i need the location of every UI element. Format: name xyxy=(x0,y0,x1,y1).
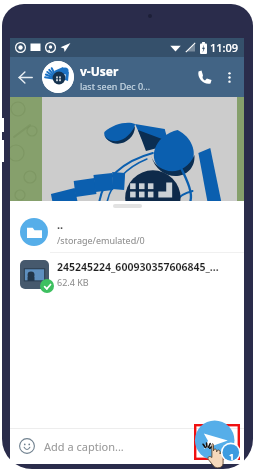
staticText: 1 xyxy=(229,450,235,462)
staticText: /storage/emulated/0 xyxy=(57,234,145,246)
button[interactable]: .. xyxy=(10,211,244,252)
staticText: .. xyxy=(57,217,64,232)
staticText: 245245224_600930357606845_… xyxy=(57,260,219,274)
staticText: Add a caption... xyxy=(44,439,124,454)
button[interactable]: Emoji xyxy=(17,436,37,456)
staticText: last seen Dec 0… xyxy=(80,80,151,92)
staticText: 62.4 KB xyxy=(57,276,89,288)
button[interactable]: Back xyxy=(12,64,38,90)
button[interactable]: More options xyxy=(218,66,240,88)
staticText: 11:09 xyxy=(210,40,239,55)
button[interactable]: Send xyxy=(194,424,240,460)
button[interactable]: Call xyxy=(190,63,218,91)
button[interactable]: 245245224_600930357606845_… xyxy=(10,253,244,295)
staticText: v-User xyxy=(80,63,119,79)
